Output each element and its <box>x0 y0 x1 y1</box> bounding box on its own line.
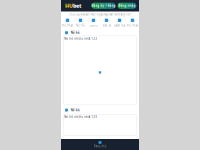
staticText: Nổ hũ <box>71 31 80 34</box>
button[interactable]: Thể thao <box>126 18 139 27</box>
staticText: Thể thao <box>126 24 138 27</box>
staticText: Nổ hũ <box>71 108 80 112</box>
staticText: Đăng nhập <box>118 4 135 7</box>
staticText: Nổ hũ nhiều nhất 123 <box>64 115 97 119</box>
staticText: Thể thao <box>61 24 73 27</box>
button[interactable]: Game bài <box>113 18 126 27</box>
staticText: Chúc quý khách một ngày may mắn và thắng… <box>68 13 131 16</box>
button[interactable]: Đăng ký / Đăng <box>91 3 115 9</box>
button[interactable]: Thể thao <box>61 18 74 27</box>
button[interactable]: HU <box>65 2 81 9</box>
staticText: Nổ hũ <box>76 24 85 27</box>
staticText: HU <box>65 2 73 9</box>
staticText: Bắn cá <box>102 24 110 27</box>
button[interactable]: Bắn cá <box>100 18 113 27</box>
button[interactable]: Nổ hũ <box>74 18 87 27</box>
staticText: Nổ hũ nhiều nhất 123 <box>64 37 97 40</box>
button[interactable]: Đăng nhập <box>117 3 136 9</box>
button[interactable]: Trang chủ <box>93 141 106 148</box>
button[interactable]: Casino <box>87 18 100 27</box>
staticText: Đăng ký / Đăng <box>91 4 115 7</box>
staticText: Trang chủ <box>93 144 106 148</box>
staticText: bet <box>73 2 81 9</box>
staticText: Game bài <box>113 24 125 27</box>
staticText: Casino <box>89 24 98 27</box>
